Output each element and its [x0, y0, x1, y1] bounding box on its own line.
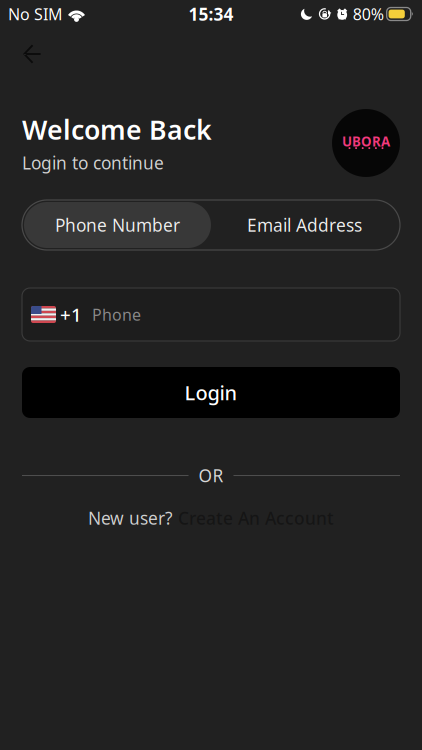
staticText: Create An Account	[178, 506, 334, 529]
staticText: UBORA	[342, 132, 390, 150]
button[interactable]: New user?	[0, 506, 422, 530]
staticText: Phone Number	[55, 213, 180, 236]
staticText: +1	[60, 302, 82, 327]
staticText: Login to continue	[22, 151, 164, 174]
staticText: Email Address	[247, 213, 362, 236]
staticText: Phone	[92, 304, 141, 325]
staticText: 80%	[353, 3, 384, 25]
button[interactable]: Phone Number	[24, 202, 211, 248]
staticText: 15:34	[188, 2, 233, 25]
button[interactable]: Email Address	[211, 202, 398, 248]
staticText: OR	[198, 464, 223, 487]
staticText: Welcome Back	[22, 112, 212, 147]
staticText: New user?	[88, 506, 173, 529]
staticText: No SIM	[8, 3, 63, 25]
button[interactable]: Back	[12, 34, 52, 74]
staticText: Login	[184, 379, 237, 406]
button[interactable]: Login	[22, 367, 400, 418]
